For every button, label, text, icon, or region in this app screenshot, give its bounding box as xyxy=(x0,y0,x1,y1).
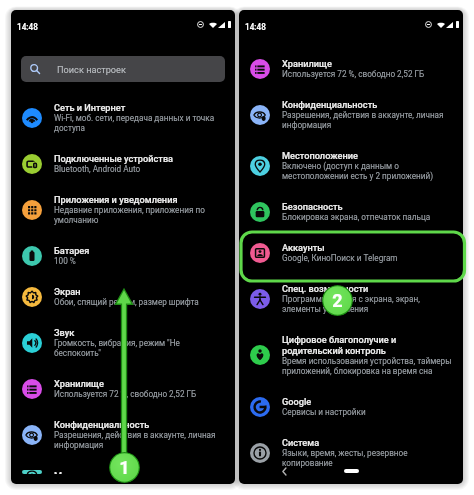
staticText: Батарея xyxy=(54,245,90,256)
staticText: 1 xyxy=(119,457,130,478)
button[interactable]: Звук xyxy=(11,317,235,368)
staticText: Разрешения, действия в аккаунте, личная … xyxy=(54,430,226,450)
button[interactable]: Хранилище xyxy=(239,48,463,89)
staticText: Bluetooth, Android Auto xyxy=(54,164,141,174)
staticText: Громкость, вибрация, режим "Не беспокоит… xyxy=(54,338,226,358)
staticText: Безопасность xyxy=(282,201,343,212)
staticText: Программы чтения с экрана, экран, элемен… xyxy=(282,294,454,314)
staticText: Используется 72 %, свободно 2,52 ГБ xyxy=(54,389,197,399)
button[interactable]: Сеть и Интернет xyxy=(11,92,235,143)
button[interactable]: Батарея xyxy=(11,235,235,276)
staticText: Сеть и Интернет xyxy=(54,102,126,113)
staticText: Google xyxy=(282,396,312,407)
button[interactable]: Местоположение xyxy=(11,460,235,484)
button[interactable]: Аккаунты xyxy=(239,232,463,273)
button[interactable]: Home xyxy=(344,469,359,473)
staticText: 14:48 xyxy=(17,22,38,32)
staticText: Языки, время, жесты, резервное копирован… xyxy=(282,448,454,468)
staticText: Экран xyxy=(54,286,81,297)
staticText: Хранилище xyxy=(54,378,104,389)
staticText: 100 % xyxy=(54,256,76,266)
button[interactable]: Экран xyxy=(11,276,235,317)
staticText: Включено (доступ к данным о местоположен… xyxy=(282,161,454,181)
staticText: Приложения и уведомления xyxy=(54,194,178,205)
button[interactable]: Search xyxy=(21,56,225,82)
staticText: Недавние приложения, приложения по умолч… xyxy=(54,205,226,225)
staticText: 14:48 xyxy=(245,22,266,32)
other: Back xyxy=(280,467,289,476)
button[interactable]: Подключенные устройства xyxy=(11,143,235,184)
staticText: Используется 72 %, свободно 2,52 ГБ xyxy=(282,69,425,79)
button[interactable]: Цифровое благополучие и родительский кон… xyxy=(239,324,463,386)
staticText: Конфиденциальность xyxy=(54,419,150,430)
other: Search xyxy=(29,63,41,75)
button[interactable]: Конфиденциальность xyxy=(11,409,235,460)
staticText: Google, КиноПоиск и Telegram xyxy=(282,253,398,263)
button[interactable]: Google xyxy=(239,386,463,427)
staticText: 2 xyxy=(332,290,343,311)
staticText: Время использования устройства, таймеры … xyxy=(282,356,454,376)
button[interactable]: Система xyxy=(239,427,463,478)
staticText: Местоположение xyxy=(54,470,131,474)
button[interactable]: Безопасность xyxy=(239,191,463,232)
button[interactable]: Местоположение xyxy=(239,140,463,191)
staticText: Поиск настроек xyxy=(57,64,126,75)
staticText: Система xyxy=(282,437,320,448)
staticText: Хранилище xyxy=(282,58,332,69)
staticText: Цифровое благополучие и родительский кон… xyxy=(282,334,454,356)
staticText: Разрешения, действия в аккаунте, личная … xyxy=(282,110,454,130)
staticText: Блокировка экрана, отпечаток пальца xyxy=(282,212,431,222)
staticText: Звук xyxy=(54,327,75,338)
button[interactable]: Приложения и уведомления xyxy=(11,184,235,235)
button[interactable]: Хранилище xyxy=(11,368,235,409)
staticText: Сервисы и настройки xyxy=(282,407,366,417)
button[interactable]: Конфиденциальность xyxy=(239,89,463,140)
staticText: Аккаунты xyxy=(282,242,325,253)
staticText: Подключенные устройства xyxy=(54,153,174,164)
staticText: Местоположение xyxy=(282,150,359,161)
staticText: Wi-Fi, моб. сети, передача данных и точк… xyxy=(54,113,226,133)
staticText: Конфиденциальность xyxy=(282,99,378,110)
button[interactable]: Step 1 xyxy=(109,452,140,483)
button[interactable]: Спец. возможности xyxy=(239,273,463,324)
staticText: Спец. возможности xyxy=(282,283,369,294)
button[interactable]: Step 2 xyxy=(322,285,353,316)
staticText: Обои, спящий режим, размер шрифта xyxy=(54,297,199,307)
